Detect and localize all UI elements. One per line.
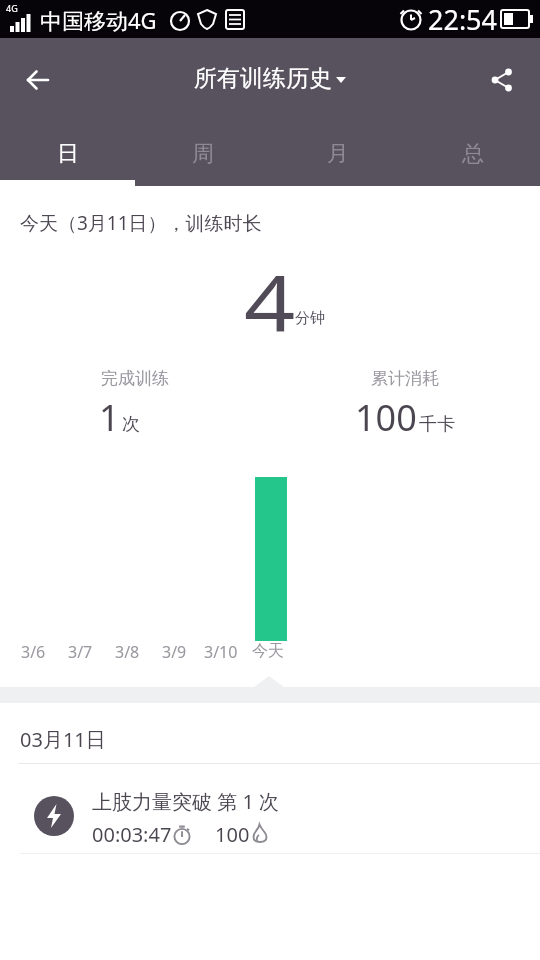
staticText: 今天: [252, 641, 284, 661]
staticText: 100: [355, 393, 417, 442]
button[interactable]: [482, 60, 522, 100]
button[interactable]: 所有训练历史: [194, 64, 347, 93]
button[interactable]: 月: [270, 122, 405, 186]
staticText: 今天（3月11日），训练时长: [20, 210, 262, 236]
button[interactable]: 总: [405, 122, 540, 186]
button[interactable]: 周: [135, 122, 270, 186]
staticText: 累计消耗: [371, 368, 439, 389]
staticText: 分钟: [295, 309, 325, 328]
staticText: 所有训练历史: [194, 64, 332, 93]
staticText: 3/8: [115, 641, 140, 663]
button[interactable]: 上肢力量突破 第 1 次: [0, 770, 540, 854]
staticText: 03月11日: [20, 726, 106, 753]
staticText: 次: [122, 413, 140, 436]
staticText: 100: [215, 821, 250, 848]
staticText: 月: [327, 140, 349, 168]
staticText: 日: [57, 140, 79, 168]
staticText: 完成训练: [101, 368, 169, 389]
staticText: 周: [192, 140, 214, 168]
staticText: 1: [99, 393, 120, 442]
staticText: 00:03:47: [92, 821, 172, 848]
staticText: 4: [244, 250, 296, 354]
button[interactable]: [18, 60, 58, 100]
staticText: 3/10: [204, 641, 238, 663]
staticText: 3/7: [68, 641, 93, 663]
staticText: 中国移动4G: [40, 5, 157, 35]
staticText: 3/9: [162, 641, 187, 663]
staticText: 总: [462, 140, 484, 168]
staticText: 千卡: [419, 413, 455, 436]
staticText: 4G: [6, 2, 18, 14]
staticText: 上肢力量突破 第 1 次: [92, 788, 280, 815]
staticText: 22:54: [428, 1, 498, 38]
staticText: 3/6: [21, 641, 46, 663]
button[interactable]: 日: [0, 122, 135, 186]
